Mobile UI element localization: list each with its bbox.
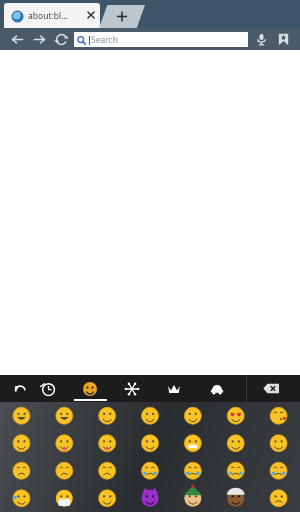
button[interactable]: Backspace [256,375,286,402]
button[interactable]: Emoji [128,484,171,512]
button[interactable]: Emoji [85,456,128,484]
button[interactable]: New tab [99,5,145,28]
button[interactable]: Emoji [257,484,300,512]
button[interactable]: Smileys [76,375,104,402]
button[interactable]: Emoji [42,429,85,456]
button[interactable]: Emoji [85,402,128,429]
button[interactable]: Emoji [85,484,128,512]
button[interactable]: Bookmarks [272,28,294,50]
button[interactable]: Emoji [214,402,257,429]
button[interactable]: Emoji [85,429,128,456]
button[interactable]: Objects [160,375,188,402]
button[interactable]: Emoji [0,429,42,456]
button[interactable]: Emoji [171,456,214,484]
button[interactable]: Emoji [214,484,257,512]
button[interactable]: Emoji [257,456,300,484]
staticText: Search [91,34,118,46]
button[interactable]: Emoji [42,402,85,429]
button[interactable]: Emoji [42,484,85,512]
button[interactable]: Emoji [128,402,171,429]
button[interactable]: about:bl… [4,3,100,28]
button[interactable]: Emoji [171,402,214,429]
button[interactable]: Emoji [0,402,42,429]
button[interactable]: Emoji [128,429,171,456]
button[interactable]: Travel [203,375,231,402]
staticText: about:bl… [28,10,68,22]
button[interactable]: Close tab [84,8,98,22]
button[interactable]: Emoji [171,429,214,456]
button[interactable]: Emoji [0,484,42,512]
button[interactable]: Nature [118,375,146,402]
button[interactable]: Emoji [128,456,171,484]
button[interactable]: Emoji [257,402,300,429]
button[interactable]: Back [6,28,28,50]
button[interactable]: Emoji [42,456,85,484]
button[interactable]: Voice search [250,28,272,50]
button[interactable]: Forward [28,28,50,50]
button[interactable]: Undo [6,375,34,402]
button[interactable]: Recent [34,375,62,402]
button[interactable]: Emoji [214,456,257,484]
button[interactable]: Reload [50,28,72,50]
button[interactable]: Emoji [171,484,214,512]
button[interactable]: Search [74,32,248,47]
button[interactable]: Emoji [0,456,42,484]
button[interactable]: Emoji [214,429,257,456]
button[interactable]: Emoji [257,429,300,456]
